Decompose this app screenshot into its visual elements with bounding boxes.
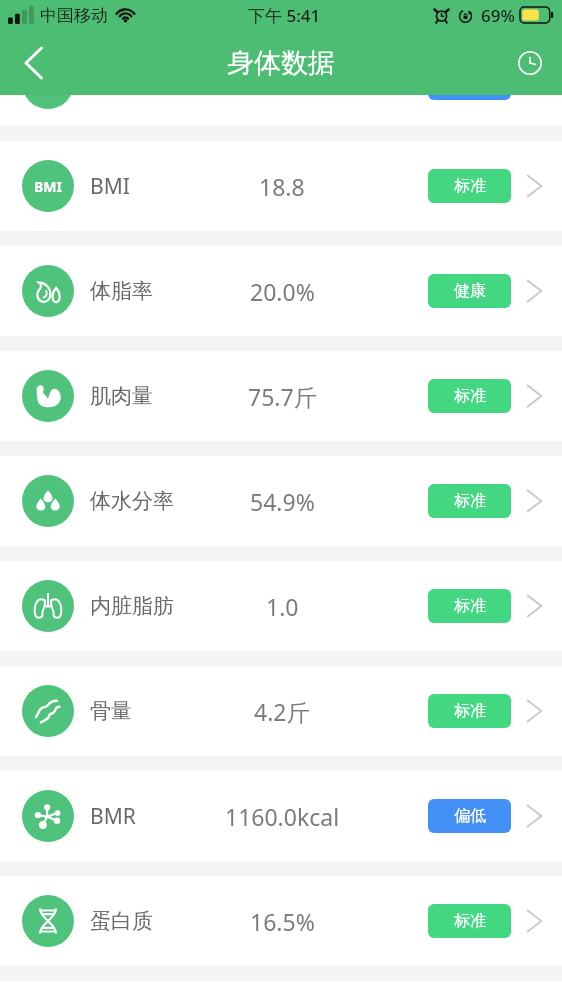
staticText: 75.7斤 (248, 381, 317, 412)
button[interactable]: 内脏脂肪 (0, 561, 562, 651)
staticText: 标准 (454, 911, 486, 931)
staticText: 蛋白质 (90, 908, 153, 934)
button[interactable]: 骨量 (0, 666, 562, 756)
button[interactable]: BMR (0, 771, 562, 861)
staticText: 1160.0kcal (225, 801, 340, 832)
button[interactable]: 体水分率 (0, 456, 562, 546)
staticText: 肌肉量 (90, 383, 153, 409)
staticText: 16.5% (250, 906, 315, 937)
staticText: 标准 (454, 596, 486, 616)
staticText: 体脂率 (90, 278, 153, 304)
staticText: 标准 (454, 386, 486, 406)
staticText: 中国移动 (40, 5, 108, 26)
staticText: 54.9% (250, 486, 315, 517)
button[interactable]: Back (9, 39, 57, 87)
staticText: 标准 (454, 701, 486, 721)
button[interactable]: 肌肉量 (0, 351, 562, 441)
staticText: 标准 (454, 176, 486, 196)
button[interactable]: BMI (0, 141, 562, 231)
staticText: 标准 (454, 491, 486, 511)
staticText: 身体数据 (227, 46, 335, 80)
staticText: 骨量 (90, 698, 132, 724)
button[interactable]: 蛋白质 (0, 876, 562, 966)
staticText: 偏低 (454, 806, 486, 826)
staticText: 18.8 (259, 171, 305, 202)
staticText: 4.2斤 (254, 696, 310, 727)
button[interactable]: 体脂率 (0, 246, 562, 336)
staticText: 69% (481, 4, 515, 27)
staticText: 下午 5:41 (248, 4, 321, 27)
button[interactable]: History (508, 41, 552, 85)
staticText: 1.0 (266, 591, 299, 622)
staticText: BMI (34, 177, 62, 196)
staticText: BMR (90, 802, 136, 831)
staticText: 健康 (454, 281, 486, 301)
staticText: BMI (90, 172, 130, 201)
staticText: 20.0% (250, 276, 315, 307)
staticText: 内脏脂肪 (90, 593, 174, 619)
button[interactable] (0, 0, 562, 126)
staticText: 体水分率 (90, 488, 174, 514)
